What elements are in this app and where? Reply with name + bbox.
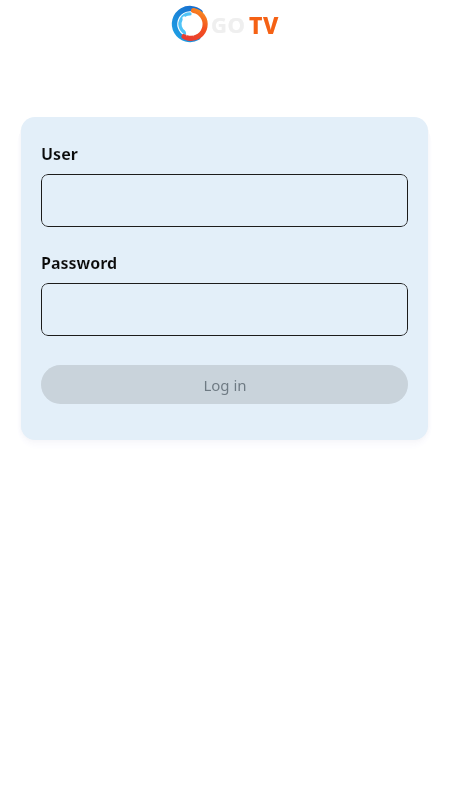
- staticText: User: [41, 143, 78, 165]
- other: GoTV logo: [172, 6, 208, 42]
- staticText: Log in: [203, 375, 247, 395]
- staticText: GO: [211, 9, 246, 39]
- button[interactable]: Log in: [41, 365, 408, 404]
- button[interactable]: Password input field: [41, 283, 408, 336]
- staticText: Password: [41, 252, 118, 274]
- button[interactable]: User input field: [41, 174, 408, 227]
- staticText: TV: [249, 9, 279, 40]
